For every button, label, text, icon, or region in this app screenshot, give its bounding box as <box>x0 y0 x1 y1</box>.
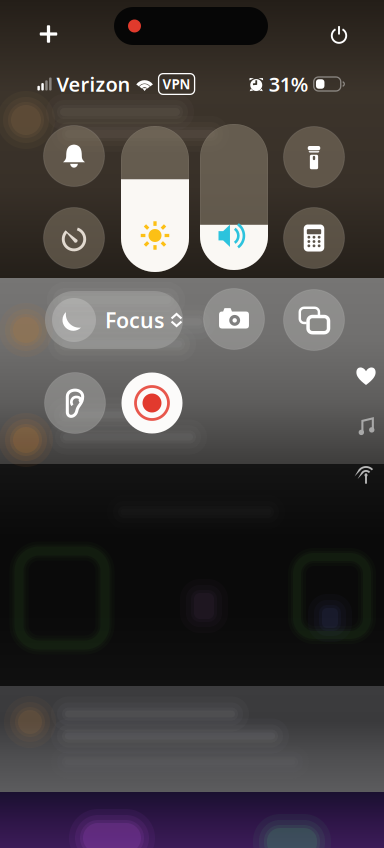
button[interactable]: Now Playing <box>348 409 384 445</box>
button[interactable]: Calculator <box>283 207 344 268</box>
staticText: 31% <box>269 71 309 97</box>
staticText: Verizon <box>57 71 131 97</box>
button[interactable]: Add a Control <box>28 13 69 55</box>
button[interactable]: Silent Mode <box>43 125 104 186</box>
button[interactable]: Favorites <box>347 357 384 395</box>
button[interactable]: Timer <box>43 207 104 268</box>
button[interactable]: Camera <box>203 288 264 349</box>
staticText: VPN <box>163 75 191 93</box>
button[interactable]: Connectivity <box>346 454 384 494</box>
button[interactable]: Hearing <box>44 372 105 433</box>
staticText: Focus <box>105 306 165 334</box>
button[interactable]: Volume <box>200 124 268 270</box>
button[interactable]: Screen Recording <box>121 372 182 433</box>
button[interactable]: Flashlight <box>283 126 344 187</box>
button[interactable]: Screen Mirroring <box>283 289 344 350</box>
button[interactable]: Brightness <box>121 126 189 272</box>
button[interactable]: Focus <box>45 291 183 349</box>
button[interactable]: Power <box>316 12 361 57</box>
